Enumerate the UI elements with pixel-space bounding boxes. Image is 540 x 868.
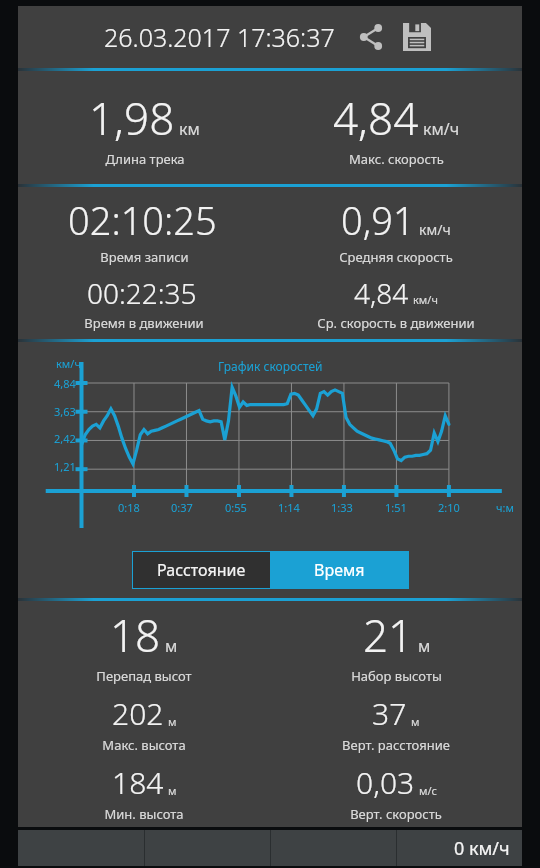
staticText: 3,63 xyxy=(54,404,76,419)
staticText: км/ч xyxy=(56,356,81,371)
staticText: 0 км/ч xyxy=(454,836,510,861)
staticText: м/с xyxy=(419,783,437,798)
staticText: м xyxy=(165,635,178,657)
staticText: 202 xyxy=(112,693,164,734)
staticText: м xyxy=(418,635,431,657)
staticText: Набор высоты xyxy=(351,667,442,685)
button[interactable]: Share xyxy=(351,17,391,57)
staticText: Время xyxy=(314,559,365,581)
button[interactable]: Расстояние xyxy=(132,551,270,589)
staticText: 1:51 xyxy=(385,500,407,515)
staticText: 37 xyxy=(372,693,407,734)
staticText: Средняя скорость xyxy=(339,248,453,266)
staticText: Верт. скорость xyxy=(350,805,442,823)
staticText: Время записи xyxy=(100,248,189,266)
staticText: Время в движении xyxy=(84,314,204,332)
staticText: 0:37 xyxy=(171,500,193,515)
staticText: 2,42 xyxy=(54,431,76,446)
button[interactable]: Время xyxy=(270,551,409,589)
staticText: Мин. высота xyxy=(104,805,184,823)
staticText: 18 xyxy=(110,605,161,665)
staticText: км/ч xyxy=(423,118,460,140)
staticText: 00:22:35 xyxy=(87,274,197,312)
staticText: м xyxy=(411,714,420,729)
staticText: Расстояние xyxy=(157,559,246,581)
staticText: 26.03.2017 17:36:37 xyxy=(104,20,335,54)
staticText: 4,84 xyxy=(333,88,419,148)
staticText: Длина трека xyxy=(105,150,185,168)
staticText: 0,91 xyxy=(341,194,415,246)
staticText: 0:55 xyxy=(225,500,247,515)
staticText: 1,98 xyxy=(89,88,175,148)
staticText: м xyxy=(168,783,177,798)
staticText: Верт. расстояние xyxy=(342,736,450,754)
staticText: Макс. скорость xyxy=(349,150,444,168)
staticText: Ср. скорость в движении xyxy=(317,314,475,332)
staticText: 1:33 xyxy=(331,500,353,515)
staticText: 02:10:25 xyxy=(68,194,217,246)
staticText: м xyxy=(168,714,177,729)
staticText: 0,03 xyxy=(356,762,415,803)
button[interactable]: 0 км/ч xyxy=(397,830,522,866)
staticText: Перепад высот xyxy=(96,667,192,685)
staticText: км xyxy=(179,118,200,140)
button[interactable]: Save xyxy=(397,17,437,57)
staticText: 0:18 xyxy=(118,500,140,515)
staticText: км/ч xyxy=(413,292,438,307)
staticText: 2:10 xyxy=(438,500,460,515)
staticText: 4,84 xyxy=(54,376,76,391)
staticText: ч:м xyxy=(496,500,514,515)
staticText: км/ч xyxy=(419,220,451,239)
staticText: График скоростей xyxy=(218,358,323,374)
staticText: 1,21 xyxy=(54,459,76,474)
staticText: Макс. высота xyxy=(102,736,186,754)
staticText: 4,84 xyxy=(354,274,409,312)
staticText: 1:14 xyxy=(278,500,300,515)
staticText: 184 xyxy=(112,762,164,803)
staticText: 21 xyxy=(363,605,414,665)
